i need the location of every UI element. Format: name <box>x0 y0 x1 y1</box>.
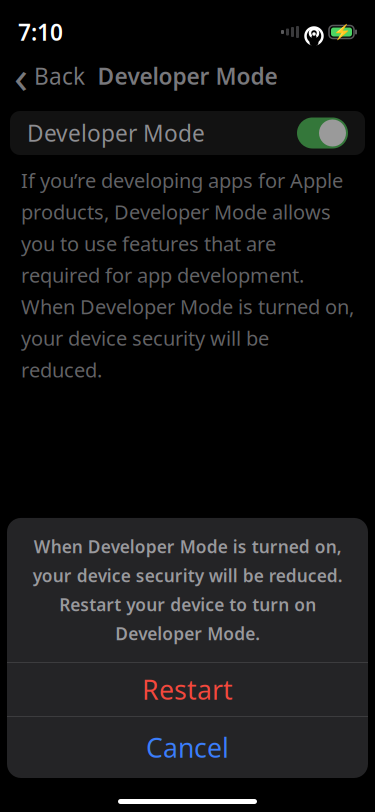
staticText: ‹ <box>14 46 28 106</box>
button[interactable]: Restart <box>7 662 368 716</box>
staticText: Developer Mode <box>97 61 277 91</box>
staticText: Cancel <box>146 730 229 765</box>
button[interactable]: Cancel <box>7 717 368 778</box>
staticText: If you’re developing apps for Apple prod… <box>21 167 354 383</box>
staticText: Developer Mode <box>27 118 205 148</box>
staticText: 7:10 <box>18 17 63 47</box>
button[interactable]: Developer Mode <box>10 111 365 155</box>
staticText: Restart <box>142 672 233 707</box>
staticText: When Developer Mode is turned on, your d… <box>32 535 342 645</box>
staticText: Back <box>34 61 85 91</box>
staticText: ⚡ <box>332 24 350 40</box>
button[interactable]: ‹ <box>6 40 93 112</box>
